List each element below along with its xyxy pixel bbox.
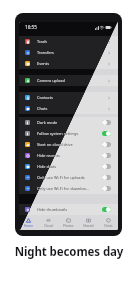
button[interactable]: Toggle bbox=[102, 153, 111, 158]
button[interactable]: Follow system settings bbox=[19, 128, 118, 139]
button[interactable]: Hide thumbnails bbox=[19, 204, 118, 215]
other: Open bbox=[107, 79, 111, 83]
button[interactable]: Transfers bbox=[19, 47, 118, 58]
staticText: Only use Wi-Fi for downloa… bbox=[37, 186, 89, 191]
staticText: Photos bbox=[63, 224, 74, 228]
staticText: Follow system settings bbox=[37, 131, 79, 136]
button[interactable]: Photos bbox=[58, 215, 78, 230]
staticText: Shared bbox=[83, 224, 94, 228]
staticText: Follow system settings bbox=[37, 131, 79, 136]
other: Open bbox=[107, 51, 111, 55]
button[interactable]: Trash bbox=[19, 36, 118, 47]
button[interactable]: Chats bbox=[19, 103, 118, 114]
staticText: Trash bbox=[37, 39, 47, 44]
staticText: Transfers bbox=[37, 50, 54, 55]
button[interactable]: Only use Wi-Fi for uploads bbox=[19, 172, 118, 183]
button[interactable]: Home bbox=[19, 215, 38, 230]
button[interactable]: Hide thumbnails bbox=[19, 204, 118, 215]
button[interactable]: Events bbox=[19, 58, 118, 69]
other: Open bbox=[107, 40, 111, 44]
button[interactable]: Toggle bbox=[102, 131, 111, 136]
button[interactable]: Dark mode bbox=[19, 117, 118, 128]
staticText: Only use Wi-Fi for downloa… bbox=[37, 186, 89, 191]
button[interactable]: Photos bbox=[58, 215, 78, 230]
staticText: Transfers bbox=[37, 50, 54, 55]
button[interactable]: Hide chats bbox=[19, 161, 118, 172]
button[interactable]: Shared bbox=[78, 215, 98, 230]
button[interactable]: Toggle bbox=[102, 142, 111, 147]
button[interactable]: Camera upload bbox=[19, 75, 118, 86]
other: Open bbox=[107, 107, 111, 111]
button[interactable]: Contacts bbox=[19, 92, 118, 103]
staticText: Events bbox=[37, 61, 50, 66]
other: Open bbox=[107, 62, 111, 66]
button[interactable]: Only use Wi-Fi for downloa… bbox=[19, 183, 118, 194]
button[interactable]: Hide recents bbox=[19, 150, 118, 161]
other: Open bbox=[107, 96, 111, 100]
button[interactable]: Toggle bbox=[102, 186, 111, 191]
button[interactable]: Toggle bbox=[102, 131, 111, 136]
other: Open bbox=[107, 40, 111, 44]
button[interactable]: Toggle bbox=[102, 175, 111, 180]
staticText: Dark mode bbox=[37, 120, 58, 125]
button[interactable]: Toggle bbox=[102, 120, 111, 125]
staticText: Cloud bbox=[44, 224, 53, 228]
staticText: Home bbox=[24, 224, 34, 228]
staticText: Hide recents bbox=[37, 153, 60, 158]
staticText: Only use Wi-Fi for uploads bbox=[37, 175, 85, 180]
staticText: Only use Wi-Fi for uploads bbox=[37, 175, 85, 180]
button[interactable]: Only use Wi-Fi for uploads bbox=[19, 172, 118, 183]
staticText: Hide recents bbox=[37, 153, 60, 158]
staticText: Hide chats bbox=[37, 164, 57, 169]
button[interactable]: Cloud bbox=[38, 215, 58, 230]
button[interactable]: Contacts bbox=[19, 92, 118, 103]
button[interactable]: Home bbox=[19, 215, 38, 230]
staticText: Night becomes day bbox=[0, 244, 138, 260]
button[interactable]: Toggle bbox=[102, 164, 111, 169]
button[interactable]: Toggle bbox=[102, 164, 111, 169]
staticText: Dark mode bbox=[37, 120, 58, 125]
other: Open bbox=[107, 51, 111, 55]
other: Open bbox=[107, 107, 111, 111]
button[interactable]: Camera upload bbox=[19, 75, 118, 86]
staticText: Chats bbox=[37, 106, 48, 111]
staticText: 16:55 bbox=[25, 24, 37, 30]
button[interactable]: Cloud bbox=[38, 215, 58, 230]
staticText: Camera upload bbox=[37, 78, 65, 83]
button[interactable]: Follow system settings bbox=[19, 128, 118, 139]
button[interactable]: Start on cloud drive bbox=[19, 139, 118, 150]
button[interactable]: Toggle bbox=[102, 153, 111, 158]
staticText: Chats bbox=[104, 224, 113, 228]
button[interactable]: Trash bbox=[19, 36, 118, 47]
button[interactable]: Hide recents bbox=[19, 150, 118, 161]
staticText: Events bbox=[37, 61, 50, 66]
button[interactable]: Toggle bbox=[102, 175, 111, 180]
staticText: Shared bbox=[83, 224, 94, 228]
button[interactable]: Toggle bbox=[102, 207, 111, 212]
staticText: 16:55 bbox=[25, 24, 37, 30]
button[interactable]: Toggle bbox=[102, 186, 111, 191]
staticText: Hide thumbnails bbox=[37, 207, 68, 212]
staticText: Home bbox=[24, 224, 34, 228]
button[interactable]: Toggle bbox=[102, 207, 111, 212]
button[interactable]: Start on cloud drive bbox=[19, 139, 118, 150]
staticText: Camera upload bbox=[37, 78, 65, 83]
staticText: Cloud bbox=[44, 224, 53, 228]
staticText: Trash bbox=[37, 39, 47, 44]
button[interactable]: Only use Wi-Fi for downloa… bbox=[19, 183, 118, 194]
button[interactable]: Chats bbox=[98, 215, 118, 230]
button[interactable]: Shared bbox=[78, 215, 98, 230]
button[interactable]: Hide chats bbox=[19, 161, 118, 172]
button[interactable]: Toggle bbox=[102, 120, 111, 125]
other: Open bbox=[107, 62, 111, 66]
button[interactable]: Transfers bbox=[19, 47, 118, 58]
staticText: Photos bbox=[63, 224, 74, 228]
staticText: Contacts bbox=[37, 95, 53, 100]
staticText: Start on cloud drive bbox=[37, 142, 73, 147]
button[interactable]: Chats bbox=[19, 103, 118, 114]
button[interactable]: Chats bbox=[98, 215, 118, 230]
button[interactable]: Dark mode bbox=[19, 117, 118, 128]
staticText: Contacts bbox=[37, 95, 53, 100]
button[interactable]: Toggle bbox=[102, 142, 111, 147]
button[interactable]: Events bbox=[19, 58, 118, 69]
